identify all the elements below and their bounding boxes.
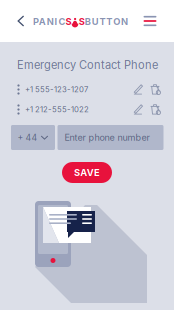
button[interactable]: Reorder contact: [12, 99, 25, 120]
staticText: PANIC: [33, 16, 65, 27]
staticText: S: [65, 16, 71, 27]
staticText: S: [79, 16, 85, 27]
button[interactable]: Menu: [137, 0, 163, 42]
button[interactable]: Edit: [130, 99, 147, 120]
button[interactable]: Delete: [147, 99, 164, 120]
button[interactable]: Delete: [147, 79, 164, 100]
staticText: + 44: [17, 132, 37, 143]
button[interactable]: Back: [9, 0, 33, 42]
staticText: BUTTON: [85, 16, 128, 27]
button[interactable]: + 44: [11, 125, 55, 150]
staticText: SAVE: [74, 167, 100, 178]
staticText: Emergency Contact Phone: [17, 58, 158, 72]
button[interactable]: SAVE: [62, 162, 112, 183]
button[interactable]: Enter phone number: [57, 125, 163, 150]
staticText: +1 555-123-1207: [25, 85, 88, 94]
staticText: Enter phone number: [64, 132, 149, 143]
button[interactable]: Edit: [130, 79, 147, 100]
staticText: +1 212-555-1022: [25, 105, 89, 114]
button[interactable]: Reorder contact: [12, 79, 25, 100]
